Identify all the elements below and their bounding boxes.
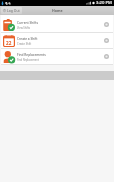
button[interactable]: Log Out [1,7,22,14]
button[interactable]: 22 [1,33,113,48]
staticText: Create a Shift [17,37,38,41]
staticText: Log Out [7,8,20,13]
staticText: Find Replacements [17,53,46,57]
staticText: Find Replacement [17,58,39,62]
button[interactable]: Find Replacements [1,49,113,64]
staticText: 22 [6,40,12,46]
staticText: Home [52,8,63,13]
staticText: View Shifts [17,26,31,30]
button[interactable]: Current Shifts [1,17,113,32]
staticText: Create Shift [17,42,32,46]
staticText: 3:20 PM [96,0,112,6]
staticText: Current Shifts [17,21,39,25]
